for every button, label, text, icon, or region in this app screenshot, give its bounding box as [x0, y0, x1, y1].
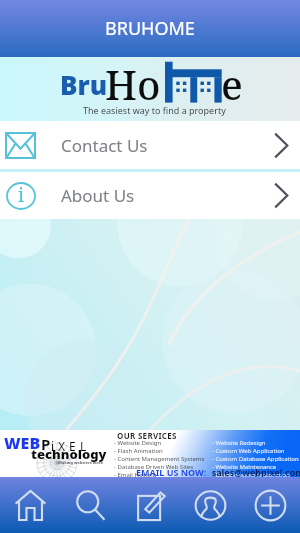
- staticText: X: [58, 438, 69, 454]
- button[interactable]: Profile: [180, 477, 240, 533]
- staticText: The easiest way to find a property: [83, 104, 226, 116]
- staticText: - Email Hosting: [114, 471, 157, 479]
- staticText: - Content Management Systems: [114, 455, 205, 463]
- staticText: - Database Driven Web Sites: [114, 463, 194, 471]
- button[interactable]: Search: [60, 477, 120, 533]
- staticText: Ho: [105, 57, 161, 111]
- staticText: WEB: [4, 432, 41, 454]
- staticText: P: [41, 434, 51, 454]
- staticText: - Flash Animation: [114, 447, 163, 455]
- staticText: technology: [31, 445, 107, 463]
- staticText: - Domain name registration: [212, 471, 290, 479]
- button[interactable]: i: [0, 172, 300, 219]
- staticText: Bru: [60, 67, 108, 102]
- button[interactable]: Post listing: [120, 477, 180, 533]
- staticText: - Website Design: [114, 439, 162, 447]
- button[interactable]: WEB: [0, 430, 300, 477]
- staticText: - Custom Database Application: [212, 455, 299, 463]
- button[interactable]: Add: [240, 477, 300, 533]
- button[interactable]: Home: [0, 477, 60, 533]
- staticText: i: [18, 182, 25, 208]
- staticText: - Custom Web Application: [212, 447, 285, 455]
- staticText: About Us: [61, 184, 271, 207]
- button[interactable]: Contact Us: [0, 121, 300, 169]
- staticText: i: [51, 438, 58, 454]
- staticText: EMAIL US NOW:: [136, 466, 207, 478]
- staticText: OUR SERVICES: [117, 430, 177, 441]
- staticText: Contact Us: [61, 134, 271, 157]
- staticText: sales@webpixel.com.bn: [207, 466, 300, 478]
- staticText: L: [80, 438, 87, 454]
- staticText: Making websites work: [58, 460, 103, 465]
- staticText: e: [221, 57, 243, 111]
- staticText: - Website Redesign: [212, 439, 266, 447]
- staticText: E: [69, 438, 80, 454]
- staticText: BRUHOME: [105, 16, 195, 41]
- staticText: - Website Maintenance: [212, 463, 277, 471]
